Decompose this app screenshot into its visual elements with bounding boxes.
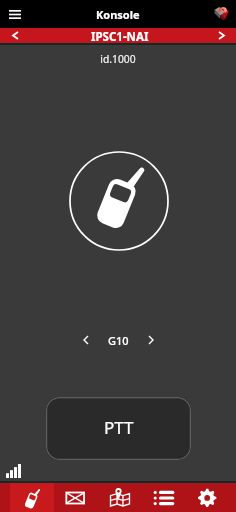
button[interactable]: Next channel — [206, 28, 236, 43]
button[interactable]: Next group — [141, 329, 162, 351]
button[interactable]: Menu — [0, 0, 30, 28]
button[interactable]: Previous group — [75, 329, 96, 351]
button[interactable]: Previous channel — [0, 28, 30, 43]
button[interactable]: Contacts — [142, 483, 186, 512]
staticText: id.1000 — [0, 52, 236, 66]
staticText: PTT — [104, 416, 134, 439]
staticText: G10 — [108, 333, 129, 348]
button[interactable]: Account — [206, 0, 236, 28]
button[interactable]: Map — [98, 483, 142, 512]
other: Radio idle — [69, 151, 169, 251]
button[interactable]: PTT — [46, 397, 191, 460]
button[interactable]: Messages — [54, 483, 98, 512]
staticText: IPSC1-NAI — [91, 29, 149, 44]
button[interactable]: Settings — [186, 483, 230, 512]
staticText: Konsole — [96, 7, 140, 22]
button[interactable]: Radio — [10, 483, 54, 512]
